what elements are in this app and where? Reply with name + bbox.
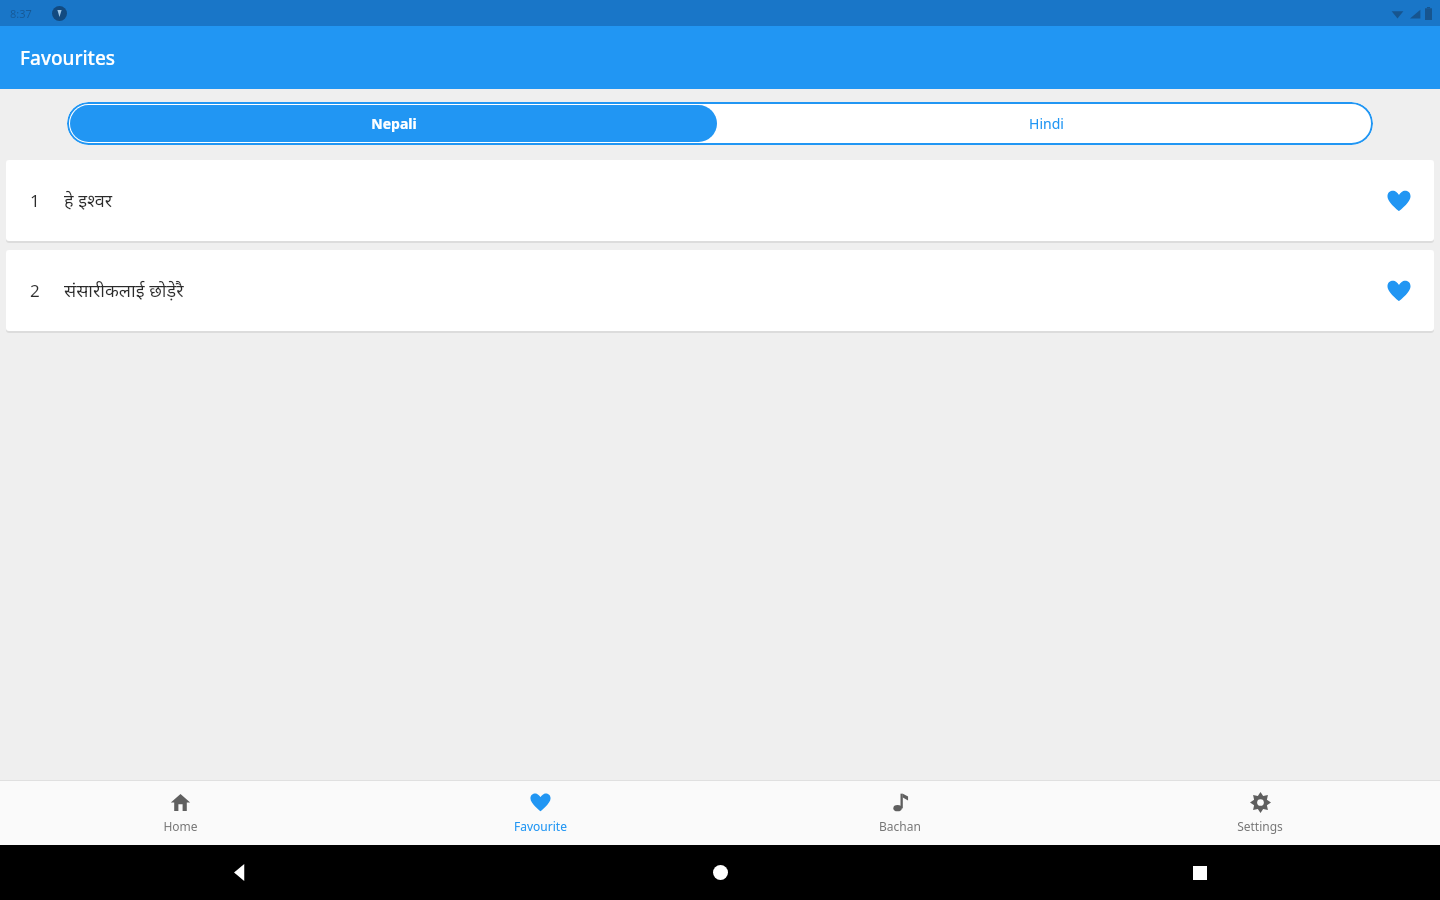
button[interactable]: Settings bbox=[1080, 781, 1440, 845]
button[interactable]: Recent apps bbox=[960, 845, 1440, 900]
staticText: संसारीकलाई छोड़ेरै bbox=[64, 278, 1364, 303]
button[interactable]: Remove from favourites bbox=[1364, 160, 1434, 241]
button[interactable]: Remove from favourites bbox=[1364, 250, 1434, 331]
staticText: Settings bbox=[1237, 818, 1283, 834]
staticText: 2 bbox=[30, 279, 40, 302]
staticText: Bachan bbox=[879, 818, 921, 834]
staticText: Home bbox=[163, 818, 198, 834]
staticText: 1 bbox=[30, 189, 40, 212]
staticText: Favourite bbox=[514, 818, 567, 834]
button[interactable]: Home bbox=[0, 781, 360, 845]
staticText: Favourites bbox=[20, 45, 116, 71]
button[interactable]: Favourite bbox=[360, 781, 720, 845]
button[interactable]: Bachan bbox=[720, 781, 1080, 845]
button[interactable]: Home bbox=[480, 845, 960, 900]
button[interactable]: Hindi bbox=[720, 102, 1373, 145]
staticText: Hindi bbox=[1029, 114, 1064, 133]
button[interactable]: 1 bbox=[6, 160, 1434, 241]
staticText: 8:37 bbox=[10, 6, 32, 21]
button[interactable]: 2 bbox=[6, 250, 1434, 331]
staticText: Nepali bbox=[371, 114, 417, 133]
button[interactable]: Back bbox=[0, 845, 480, 900]
button[interactable]: Nepali bbox=[70, 105, 717, 142]
staticText: हे इश्वर bbox=[64, 188, 1364, 213]
